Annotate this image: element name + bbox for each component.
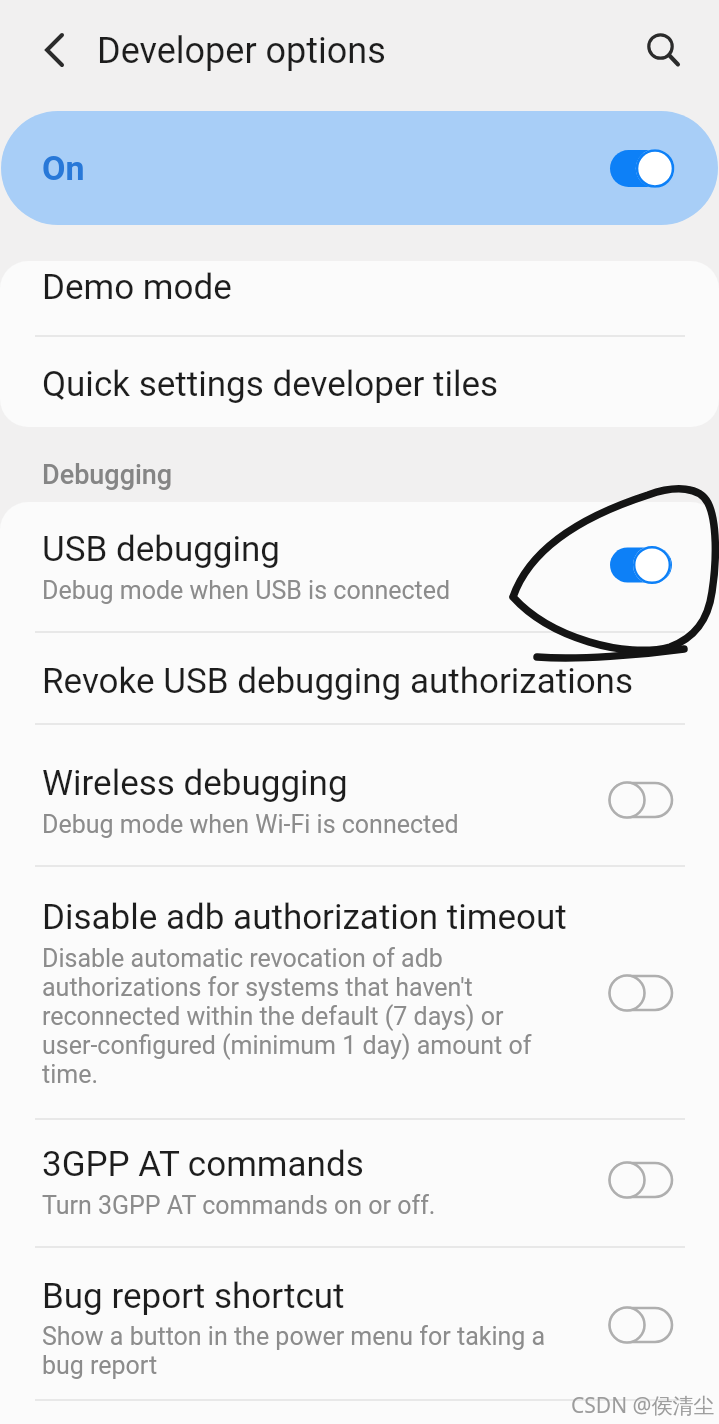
staticText: 3GPP AT commands — [42, 1144, 364, 1185]
staticText: Show a button in the power menu for taki… — [42, 1322, 546, 1380]
staticText: On — [42, 148, 85, 188]
button[interactable]: 3GPP AT commands — [0, 1120, 719, 1246]
staticText: Disable adb authorization timeout — [42, 897, 567, 938]
button[interactable]: Wireless debugging — [0, 725, 719, 865]
staticText: Debugging — [42, 459, 173, 491]
staticText: USB debugging — [42, 529, 281, 570]
button[interactable]: Disable adb authorization timeout — [0, 867, 719, 1118]
button[interactable]: Bug report shortcut — [0, 1248, 719, 1399]
button[interactable]: USB debugging — [0, 502, 719, 631]
staticText: CSDN @侯清尘 — [571, 1391, 715, 1420]
button[interactable] — [30, 25, 82, 77]
button[interactable]: On — [1, 111, 718, 225]
staticText: Developer options — [97, 30, 386, 72]
staticText: Revoke USB debugging authorizations — [42, 661, 634, 702]
staticText: Bug report shortcut — [42, 1276, 345, 1317]
button[interactable]: Quick settings developer tiles — [0, 337, 719, 427]
staticText: Quick settings developer tiles — [42, 364, 499, 405]
staticText: Disable automatic revocation of adb auth… — [42, 944, 532, 1089]
staticText: Wireless debugging — [42, 763, 348, 804]
staticText: Demo mode — [42, 267, 232, 308]
button[interactable]: Revoke USB debugging authorizations — [0, 633, 719, 723]
button[interactable] — [636, 22, 688, 74]
staticText: Debug mode when USB is connected — [42, 576, 451, 605]
button[interactable]: Demo mode — [0, 261, 719, 336]
staticText: Turn 3GPP AT commands on or off. — [42, 1191, 436, 1220]
staticText: Debug mode when Wi-Fi is connected — [42, 810, 459, 839]
